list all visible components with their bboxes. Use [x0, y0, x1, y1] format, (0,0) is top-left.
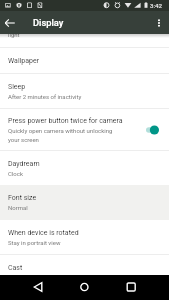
- button[interactable]: Cast: [0, 255, 169, 280]
- button[interactable]: Press power button twice for camera: [0, 109, 169, 150]
- button[interactable]: When device is rotated: [0, 220, 169, 254]
- staticText: Quickly open camera without unlocking: [8, 127, 138, 134]
- staticText: your screen: [8, 136, 138, 143]
- staticText: Font size: [8, 194, 168, 202]
- button[interactable]: Home: [57, 275, 113, 300]
- button[interactable]: Back: [0, 275, 57, 300]
- staticText: Clock: [8, 170, 158, 177]
- staticText: light: [8, 31, 20, 38]
- staticText: When device is rotated: [8, 229, 168, 237]
- button[interactable]: light: [0, 34, 169, 47]
- staticText: Wallpaper: [8, 57, 168, 65]
- button[interactable]: Wallpaper: [0, 48, 169, 73]
- staticText: Cast: [8, 264, 168, 272]
- button[interactable]: More options: [149, 13, 169, 33]
- staticText: Display: [33, 17, 64, 28]
- staticText: Sleep: [8, 83, 168, 91]
- button[interactable]: Recent apps: [113, 275, 169, 300]
- button[interactable]: Font size: [0, 185, 169, 220]
- staticText: Daydream: [8, 160, 168, 168]
- staticText: Normal: [8, 204, 158, 211]
- button[interactable]: Navigate up: [0, 13, 20, 33]
- button[interactable]: Daydream: [0, 151, 169, 185]
- staticText: Press power button twice for camera: [8, 117, 168, 125]
- staticText: Stay in portrait view: [8, 239, 158, 246]
- staticText: After 2 minutes of inactivity: [8, 93, 158, 100]
- staticText: 3:42: [150, 2, 162, 9]
- button[interactable]: Toggle press power button twice for came…: [145, 121, 169, 139]
- button[interactable]: Sleep: [0, 74, 169, 108]
